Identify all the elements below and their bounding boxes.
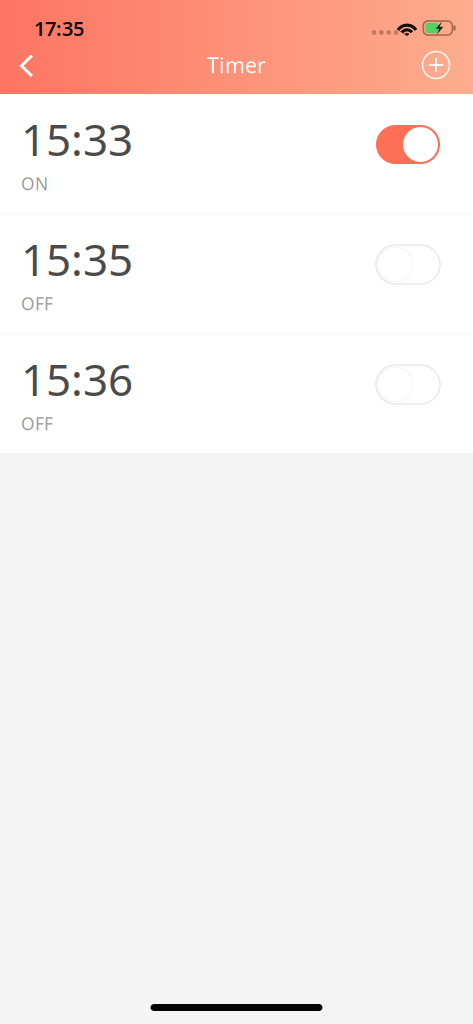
- staticText: Timer: [207, 51, 266, 79]
- staticText: ON: [21, 172, 48, 195]
- button[interactable]: 15:33: [0, 94, 473, 213]
- button[interactable]: Turn off timer 15:33: [376, 125, 440, 164]
- staticText: OFF: [21, 412, 53, 435]
- button[interactable]: 15:35: [0, 214, 473, 333]
- staticText: 17:35: [34, 15, 84, 42]
- button[interactable]: Add timer: [414, 43, 458, 87]
- staticText: 15:36: [21, 350, 133, 408]
- staticText: OFF: [21, 292, 53, 315]
- button[interactable]: Back: [4, 44, 50, 88]
- button[interactable]: Turn on timer 15:36: [376, 365, 440, 404]
- button[interactable]: 15:36: [0, 334, 473, 453]
- button[interactable]: Turn on timer 15:35: [376, 245, 440, 284]
- staticText: 15:33: [21, 110, 133, 168]
- staticText: 15:35: [21, 230, 133, 288]
